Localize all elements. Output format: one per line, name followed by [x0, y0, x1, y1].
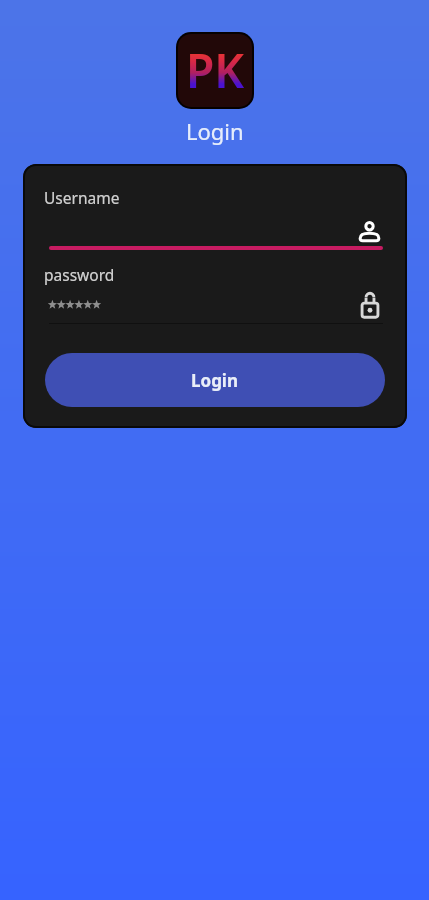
staticText: Username — [44, 187, 120, 208]
button[interactable]: Username account icon — [359, 220, 380, 242]
staticText: PK — [186, 39, 245, 102]
button[interactable]: Password lock icon — [361, 292, 379, 318]
button[interactable]: Login — [45, 353, 385, 407]
button[interactable]: PK app logo — [178, 34, 252, 107]
staticText: Login — [186, 116, 244, 146]
staticText: password — [44, 264, 115, 285]
staticText: Login — [191, 369, 239, 392]
